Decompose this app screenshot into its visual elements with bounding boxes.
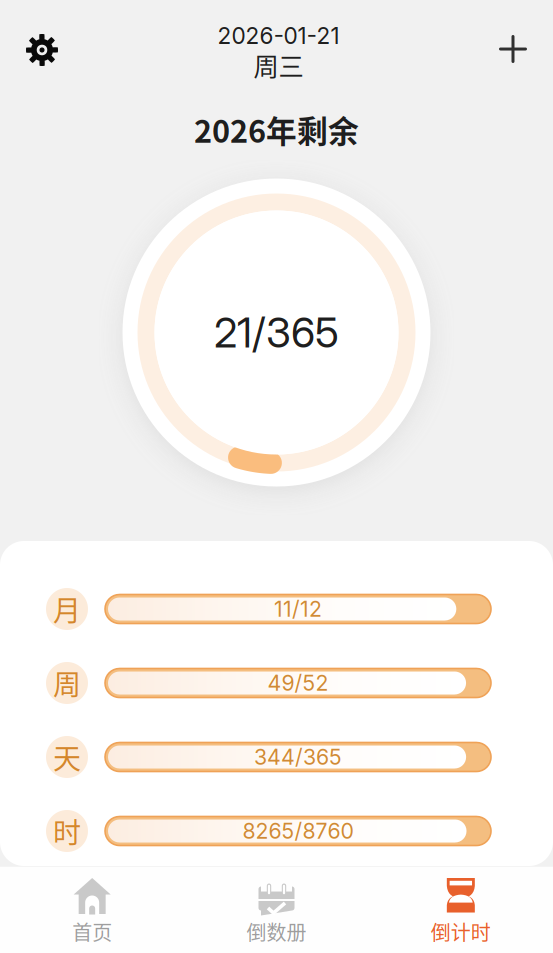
staticText: 倒数册 [246,917,306,946]
staticText: 月 [53,589,81,629]
staticText: 周三 [253,46,303,83]
button[interactable]: 倒计时 [369,873,553,950]
staticText: 时 [53,811,81,851]
staticText: 49/52 [267,670,328,696]
staticText: 21/365 [214,307,339,357]
staticText: 2026-01-21 [217,22,339,49]
staticText: 天 [53,737,81,777]
staticText: 2026年剩余 [194,107,359,151]
staticText: 首页 [72,917,112,946]
staticText: 倒计时 [431,917,491,946]
staticText: 344/365 [254,744,342,770]
staticText: 周 [53,663,81,703]
staticText: 11/12 [274,596,322,622]
button[interactable]: 倒数册 [184,873,369,950]
button[interactable]: Add [489,22,537,70]
button[interactable]: 首页 [0,873,184,950]
button[interactable]: Settings [16,22,68,74]
staticText: 8265/8760 [242,818,353,844]
